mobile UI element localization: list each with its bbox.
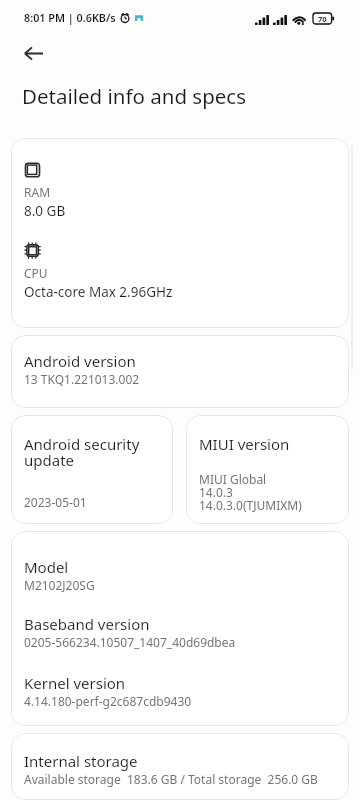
button[interactable]: Android security update: [11, 415, 173, 524]
staticText: MIUI version: [199, 434, 290, 454]
staticText: CPU: [24, 265, 48, 281]
staticText: MIUI Global 14.0.3 14.0.3.0(TJUMIXM): [199, 471, 302, 514]
staticText: 2023-05-01: [24, 494, 87, 510]
staticText: Detailed info and specs: [22, 82, 247, 110]
button[interactable]: Internal storage: [11, 733, 349, 800]
staticText: 4.14.180-perf-g2c687cdb9430: [24, 693, 192, 709]
staticText: Kernel version: [24, 673, 126, 693]
button[interactable]: MIUI version: [186, 415, 349, 524]
staticText: M2102J20SG: [24, 577, 95, 593]
staticText: Android version: [24, 351, 136, 371]
button[interactable]: Back: [14, 34, 52, 72]
button[interactable]: Model: [11, 531, 349, 726]
staticText: 8.0 GB: [24, 202, 66, 220]
button[interactable]: RAM: [11, 138, 349, 328]
staticText: RAM: [24, 184, 51, 200]
staticText: 0205-566234.10507_1407_40d69dbea: [24, 634, 236, 650]
staticText: 8:01 PM | 0.6KB/s: [24, 10, 116, 25]
button[interactable]: Android version: [11, 335, 349, 408]
staticText: Android security update: [24, 434, 161, 470]
staticText: Available storage 183.6 GB / Total stora…: [24, 771, 318, 787]
staticText: Octa-core Max 2.96GHz: [24, 283, 173, 301]
staticText: 70: [318, 14, 327, 24]
staticText: Model: [24, 557, 69, 577]
staticText: Internal storage: [24, 751, 138, 771]
staticText: Baseband version: [24, 614, 150, 634]
staticText: 13 TKQ1.221013.002: [24, 371, 140, 387]
